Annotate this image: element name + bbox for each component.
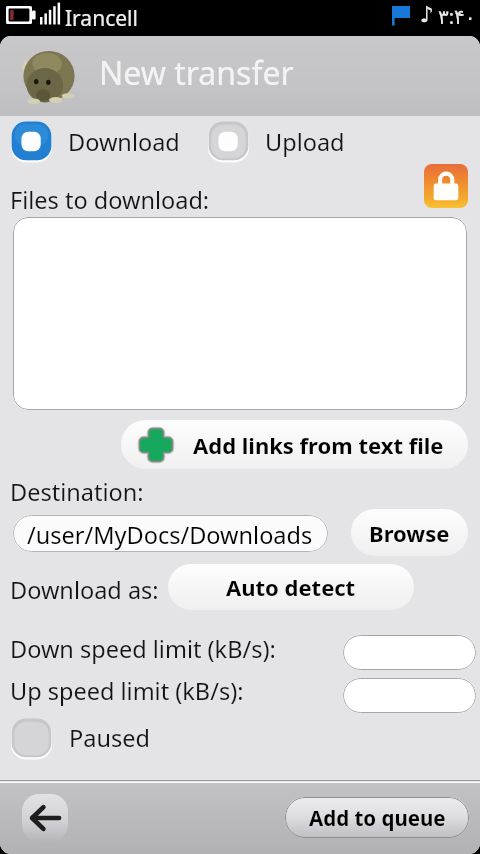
staticText: Auto detect: [226, 572, 356, 602]
button[interactable]: Add to queue: [285, 797, 469, 838]
staticText: /user/MyDocs/Downloads: [27, 519, 313, 551]
staticText: Browse: [369, 518, 450, 548]
button[interactable]: Download: [11, 121, 180, 162]
staticText: Up speed limit (kB/s):: [10, 675, 244, 707]
staticText: Download as:: [10, 574, 159, 606]
button[interactable]: Paused: [11, 718, 150, 758]
staticText: Irancell: [65, 4, 138, 33]
button[interactable]: Auto detect: [168, 564, 414, 610]
button[interactable]: Locked: [424, 164, 468, 208]
staticText: Add to queue: [309, 804, 446, 832]
staticText: Paused: [69, 722, 150, 754]
staticText: Down speed limit (kB/s):: [10, 633, 276, 665]
staticText: Upload: [265, 126, 345, 158]
button[interactable]: Add links from text file: [121, 420, 468, 469]
button[interactable]: Back: [22, 794, 68, 842]
staticText: ♪: [420, 2, 435, 28]
button[interactable]: /user/MyDocs/Downloads: [13, 515, 328, 552]
staticText: Add links from text file: [193, 430, 444, 460]
staticText: New transfer: [99, 51, 294, 95]
staticText: Files to download:: [10, 184, 210, 216]
staticText: ۳:۴۰: [438, 3, 476, 30]
button[interactable]: Upload: [208, 121, 345, 162]
button[interactable]: Browse: [351, 509, 468, 556]
staticText: Download: [68, 126, 180, 158]
button[interactable]: [343, 678, 476, 713]
button[interactable]: [13, 217, 467, 410]
staticText: Destination:: [10, 476, 144, 508]
button[interactable]: [343, 635, 476, 670]
